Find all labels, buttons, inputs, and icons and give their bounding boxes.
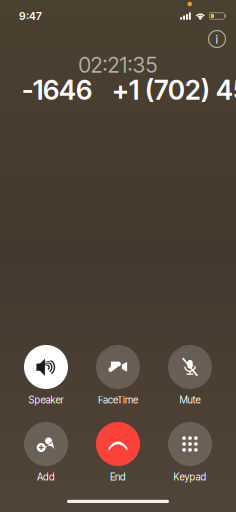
- button[interactable]: FaceTime: [82, 345, 154, 405]
- staticText: FaceTime: [98, 394, 138, 406]
- button[interactable]: Call info: [203, 25, 231, 53]
- staticText: Mute: [179, 394, 200, 406]
- button[interactable]: Speaker: [10, 345, 82, 405]
- staticText: End: [110, 471, 126, 483]
- staticText: -1646: [22, 74, 92, 106]
- staticText: 9:47: [19, 9, 42, 22]
- button[interactable]: End: [82, 422, 154, 482]
- button[interactable]: Keypad: [154, 422, 226, 482]
- staticText: +1 (702) 456: [112, 74, 236, 106]
- staticText: Keypad: [173, 471, 206, 483]
- staticText: Speaker: [28, 394, 63, 406]
- staticText: Add: [37, 471, 55, 483]
- staticText: i: [215, 31, 218, 47]
- button[interactable]: Add: [10, 422, 82, 482]
- button[interactable]: Mute: [154, 345, 226, 405]
- staticText: 02:21:35: [78, 52, 157, 78]
